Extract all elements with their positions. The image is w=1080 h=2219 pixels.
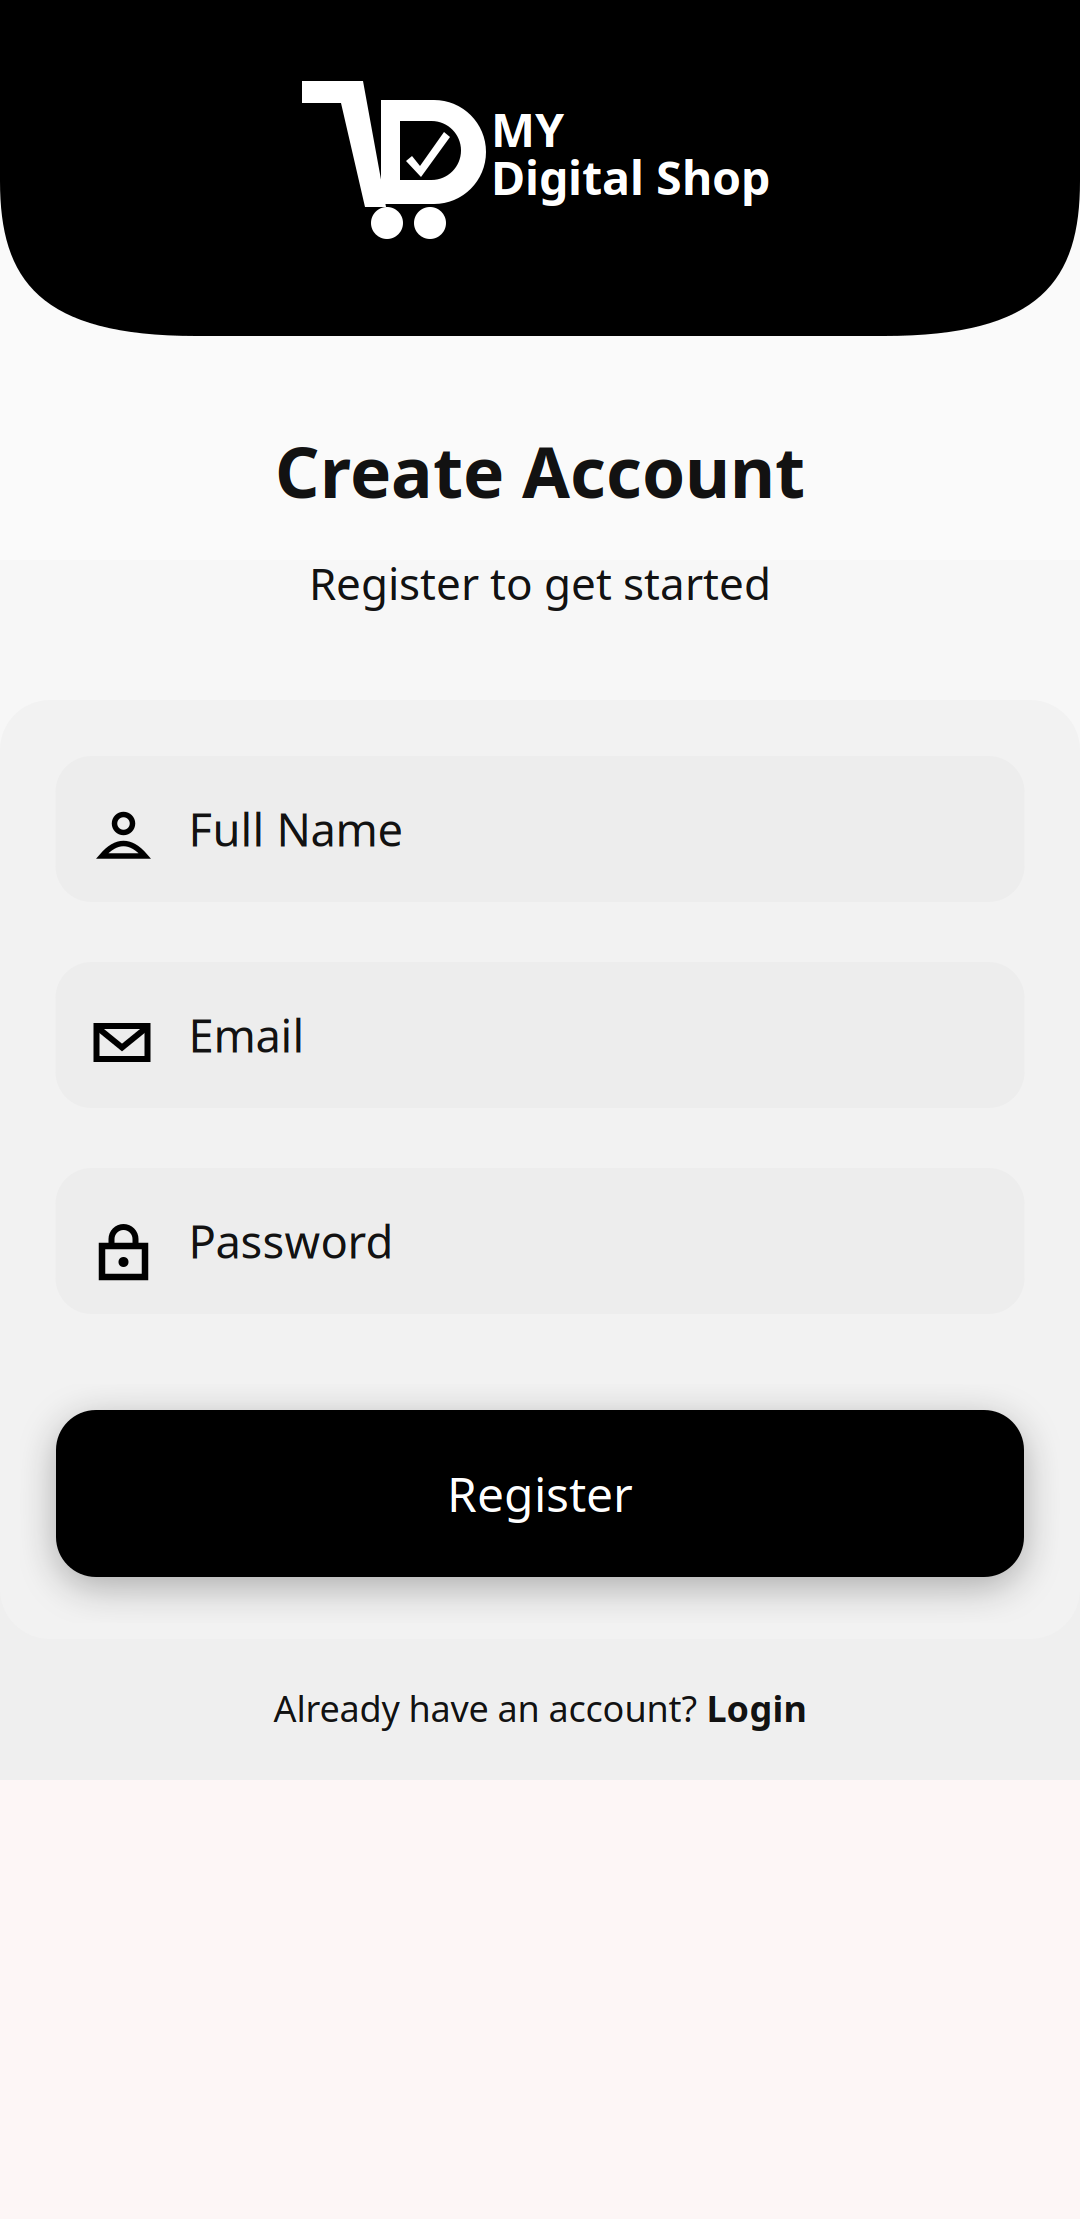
button[interactable]: Register	[56, 1410, 1024, 1577]
staticText: Email	[188, 1005, 304, 1065]
staticText: Create Account	[275, 425, 805, 517]
staticText: Already have an account?	[273, 1684, 706, 1732]
button[interactable]: Password	[55, 1168, 1024, 1314]
staticText: Register	[447, 1462, 633, 1525]
staticText: Digital Shop	[491, 146, 770, 208]
button[interactable]: Full Name	[55, 756, 1024, 902]
button[interactable]: Already have an account?	[0, 1682, 1080, 1734]
staticText: Register to get started	[309, 554, 771, 612]
button[interactable]: Email	[55, 962, 1024, 1108]
staticText: Password	[188, 1211, 393, 1271]
staticText: MY	[491, 98, 564, 160]
staticText: Login	[706, 1684, 806, 1732]
staticText: Full Name	[188, 799, 403, 859]
